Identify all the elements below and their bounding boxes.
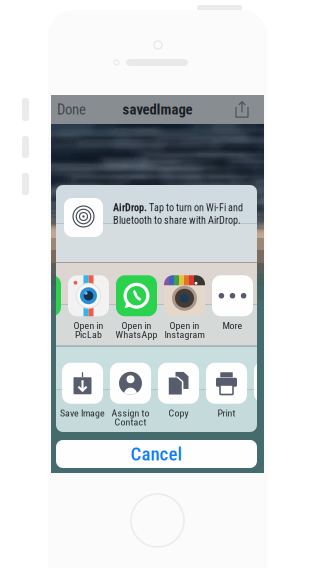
button[interactable]: More: [208, 263, 256, 346]
staticText: PicLab: [75, 329, 102, 341]
button[interactable]: Copy: [154, 348, 202, 431]
button[interactable]: Share: [227, 95, 257, 124]
button[interactable]: Open in: [160, 263, 208, 346]
staticText: savedImage: [122, 101, 192, 118]
button[interactable]: AirDrop. Tap to turn on Wi-Fi and: [56, 185, 257, 263]
staticText: Print: [217, 407, 235, 419]
staticText: Copy: [168, 407, 188, 419]
staticText: WhatsApp: [115, 329, 157, 341]
staticText: Instagram: [164, 329, 204, 341]
staticText: AirDrop. Tap to turn on Wi-Fi and: [113, 202, 243, 214]
staticText: Done: [57, 101, 86, 118]
staticText: Assign to: [111, 407, 149, 419]
staticText: Save Image: [60, 407, 105, 419]
button[interactable]: Save Image: [58, 348, 106, 431]
button[interactable]: Print: [202, 348, 250, 431]
button[interactable]: Open in: [64, 263, 112, 346]
button[interactable]: Done: [57, 95, 97, 124]
staticText: Cancel: [130, 443, 182, 465]
button[interactable]: Open in: [112, 263, 160, 346]
staticText: Open in: [73, 320, 103, 332]
button[interactable]: Assign to: [106, 348, 154, 431]
button[interactable]: Cancel: [56, 440, 257, 468]
staticText: More: [222, 320, 242, 332]
staticText: Contact: [114, 416, 146, 428]
staticText: Open in: [121, 320, 151, 332]
staticText: Open in: [169, 320, 199, 332]
staticText: Bluetooth to share with AirDrop.: [113, 214, 241, 226]
